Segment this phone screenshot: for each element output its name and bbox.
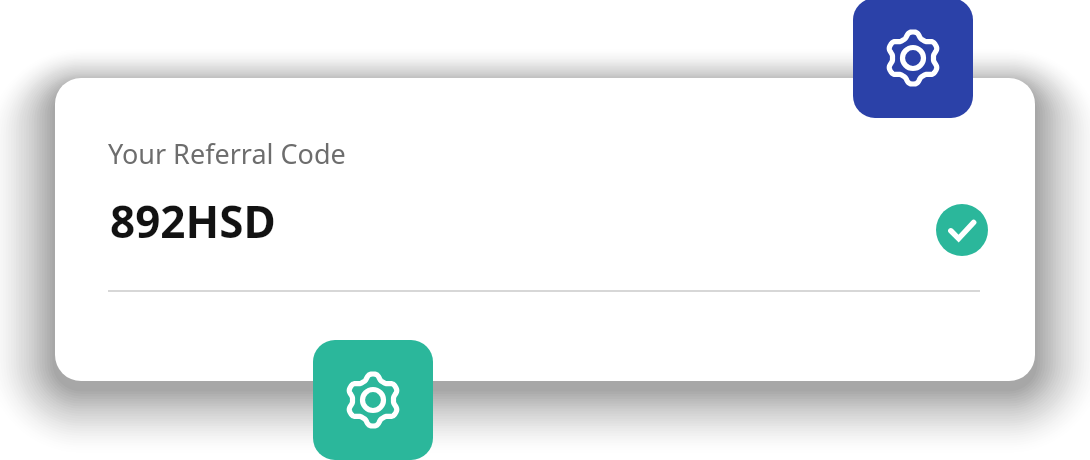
staticText: 892HSD — [110, 191, 276, 251]
button[interactable]: Copied — [936, 204, 988, 256]
button[interactable]: Settings — [313, 340, 433, 460]
button[interactable]: Your Referral Code — [55, 78, 1035, 381]
button[interactable]: Settings — [853, 0, 973, 118]
staticText: Your Referral Code — [108, 135, 346, 172]
